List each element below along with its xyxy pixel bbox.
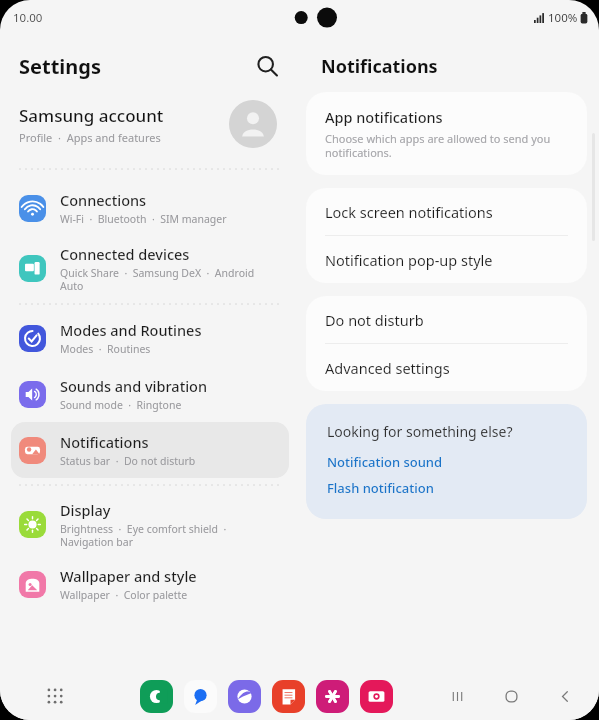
button[interactable]: Connections xyxy=(11,180,289,236)
staticText: Modes · Routines xyxy=(60,342,151,356)
staticText: Wi-Fi · Bluetooth · SIM manager xyxy=(60,212,227,226)
button[interactable]: Search xyxy=(247,46,287,86)
staticText: Connections xyxy=(60,190,147,210)
button[interactable]: Messages xyxy=(184,680,217,713)
staticText: Flash notification xyxy=(327,479,434,497)
staticText: Wallpaper · Color palette xyxy=(60,588,188,602)
staticText: Sound mode · Ringtone xyxy=(60,398,182,412)
staticText: Brightness · Eye comfort shield · Naviga… xyxy=(60,522,227,549)
staticText: 100% xyxy=(548,10,578,26)
staticText: Display xyxy=(60,500,111,520)
button[interactable]: App notifications xyxy=(306,92,587,175)
button[interactable]: Notification pop-up style xyxy=(306,236,587,283)
staticText: Profile · Apps and features xyxy=(19,130,161,145)
button[interactable]: Do not disturb xyxy=(306,296,587,343)
button[interactable]: Phone xyxy=(140,680,173,713)
staticText: 10.00 xyxy=(13,10,43,26)
staticText: Notifications xyxy=(321,54,438,79)
staticText: Samsung account xyxy=(19,104,164,127)
button[interactable]: Home xyxy=(495,680,527,712)
button[interactable]: Notification sound xyxy=(327,453,443,471)
button[interactable]: Advanced settings xyxy=(306,344,587,391)
staticText: Connected devices xyxy=(60,244,190,264)
button[interactable]: Recents xyxy=(441,680,473,712)
staticText: Advanced settings xyxy=(325,358,450,378)
button[interactable]: Apps xyxy=(38,679,72,713)
staticText: Lock screen notifications xyxy=(325,202,493,222)
staticText: Settings xyxy=(19,53,101,80)
button[interactable]: Notes xyxy=(272,680,305,713)
button[interactable]: Modes and Routines xyxy=(11,310,289,366)
staticText: Notification sound xyxy=(327,453,443,471)
staticText: Quick Share · Samsung DeX · Android Auto xyxy=(60,266,255,293)
button[interactable]: Notifications xyxy=(11,422,289,478)
button[interactable]: Flash notification xyxy=(327,479,434,497)
button[interactable]: Sounds and vibration xyxy=(11,366,289,422)
button[interactable]: Display xyxy=(11,492,289,556)
button[interactable]: Wallpaper and style xyxy=(11,556,289,612)
staticText: Notifications xyxy=(60,432,149,452)
staticText: Do not disturb xyxy=(325,310,424,330)
button[interactable]: Camera xyxy=(360,680,393,713)
button[interactable]: Back xyxy=(549,680,581,712)
button[interactable]: Internet xyxy=(228,680,261,713)
staticText: App notifications xyxy=(325,107,443,127)
staticText: Choose which apps are allowed to send yo… xyxy=(325,131,551,160)
staticText: Sounds and vibration xyxy=(60,376,208,396)
button[interactable]: Connected devices xyxy=(11,236,289,300)
button[interactable]: Gallery xyxy=(316,680,349,713)
staticText: Modes and Routines xyxy=(60,320,202,340)
staticText: Wallpaper and style xyxy=(60,566,197,586)
button[interactable]: Samsung account xyxy=(0,92,300,156)
staticText: Notification pop-up style xyxy=(325,250,493,270)
button[interactable]: Lock screen notifications xyxy=(306,188,587,235)
staticText: Status bar · Do not disturb xyxy=(60,454,196,468)
staticText: Looking for something else? xyxy=(327,422,513,441)
